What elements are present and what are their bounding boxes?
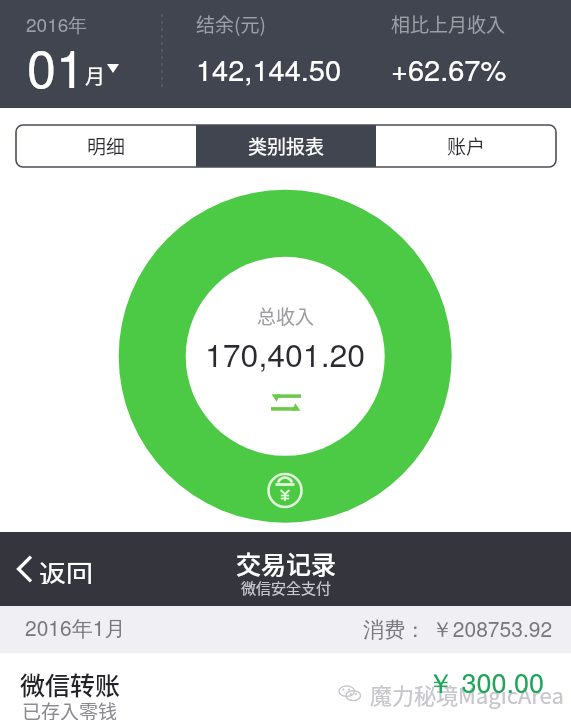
staticText: 结余(元) bbox=[196, 10, 266, 38]
button[interactable]: Back bbox=[16, 554, 93, 584]
staticText: +62.67% bbox=[391, 48, 507, 90]
button[interactable]: 明细 bbox=[16, 125, 196, 167]
staticText: 相比上月收入 bbox=[391, 10, 506, 38]
staticText: 微信转账 bbox=[20, 666, 121, 702]
other: Back bbox=[16, 556, 32, 582]
staticText: 2016年1月 bbox=[25, 612, 126, 642]
staticText: 月 bbox=[85, 61, 105, 90]
staticText: 类别报表 bbox=[248, 132, 325, 160]
button[interactable]: 账户 bbox=[376, 125, 556, 167]
staticText: 返回 bbox=[39, 554, 93, 584]
staticText: ￥ 300.00 bbox=[427, 662, 545, 701]
staticText: 总收入 bbox=[257, 302, 315, 330]
staticText: 已存入零钱 bbox=[22, 697, 118, 720]
staticText: 142,144.50 bbox=[196, 48, 342, 90]
staticText: 01 bbox=[27, 28, 85, 102]
button[interactable]: 类别报表 bbox=[196, 125, 376, 167]
staticText: 2016年 bbox=[26, 10, 88, 37]
staticText: 魔力秘境MagicArea bbox=[370, 678, 564, 710]
staticText: 消费： ￥208753.92 bbox=[363, 613, 553, 643]
staticText: 明细 bbox=[87, 132, 126, 160]
staticText: 账户 bbox=[447, 132, 486, 160]
staticText: 170,401.20 bbox=[205, 330, 366, 376]
button[interactable]: 微信转账 bbox=[0, 653, 571, 720]
staticText: 交易记录 bbox=[236, 545, 337, 581]
staticText: 微信安全支付 bbox=[241, 577, 332, 599]
